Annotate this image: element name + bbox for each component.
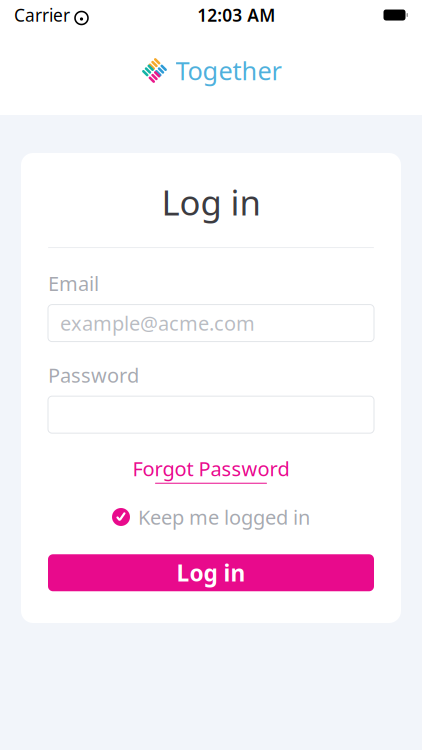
button[interactable]: example@acme.com (48, 305, 374, 342)
button[interactable]: Keep me logged in (112, 504, 310, 530)
staticText: Keep me logged in (138, 504, 310, 530)
staticText: Password (48, 362, 139, 388)
staticText: 12:03 AM (197, 3, 275, 26)
staticText: Log in (176, 558, 245, 588)
button[interactable]: Forgot Password (132, 455, 289, 484)
staticText: Together (175, 54, 281, 87)
staticText: Email (48, 270, 99, 297)
button[interactable]: Log in (48, 554, 374, 591)
staticText: Carrier (14, 3, 70, 26)
staticText: example@acme.com (60, 310, 255, 336)
staticText: Log in (161, 179, 260, 225)
staticText: Forgot Password (132, 455, 289, 482)
button[interactable] (48, 396, 374, 433)
